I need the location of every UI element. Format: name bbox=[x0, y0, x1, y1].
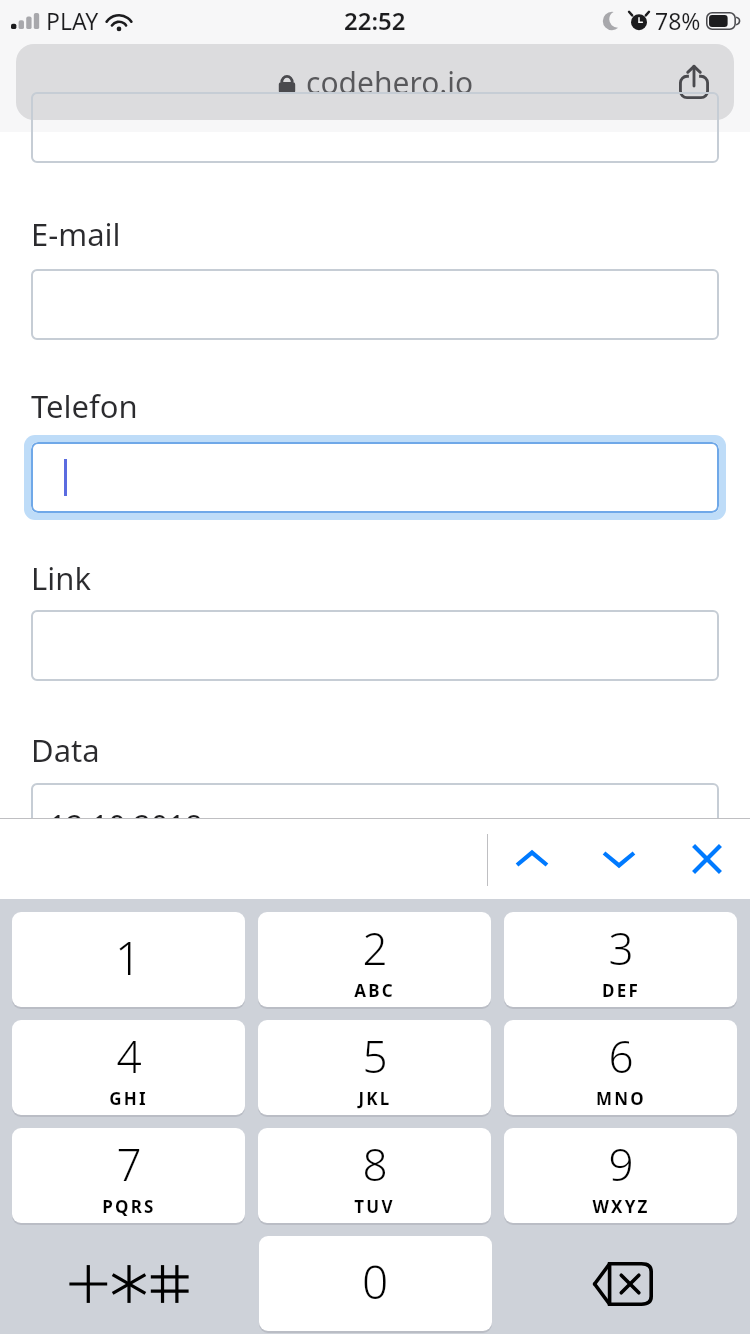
staticText: 5 bbox=[362, 1026, 388, 1086]
staticText: TUV bbox=[354, 1195, 395, 1218]
staticText: 12.10.2018 bbox=[49, 805, 203, 846]
staticText: 4 bbox=[116, 1026, 142, 1086]
button[interactable]: 0 bbox=[259, 1236, 492, 1331]
button[interactable]: 5 bbox=[258, 1020, 491, 1115]
button[interactable]: 1 bbox=[12, 912, 245, 1007]
staticText: PQRS bbox=[102, 1195, 156, 1218]
button[interactable]: codehero.io bbox=[16, 44, 734, 120]
staticText: E-mail bbox=[31, 213, 121, 255]
staticText: 6 bbox=[608, 1026, 634, 1086]
staticText: DEF bbox=[602, 979, 640, 1002]
staticText: 78% bbox=[655, 5, 701, 36]
staticText: codehero.io bbox=[306, 62, 474, 103]
staticText: Telefon bbox=[31, 385, 138, 427]
button[interactable]: Share bbox=[670, 58, 718, 106]
staticText: 8 bbox=[362, 1134, 388, 1194]
staticText: 22:52 bbox=[344, 4, 406, 37]
staticText: MNO bbox=[596, 1087, 646, 1110]
staticText: ABC bbox=[354, 979, 395, 1002]
button[interactable] bbox=[31, 610, 719, 681]
staticText: 9 bbox=[608, 1134, 634, 1194]
button[interactable]: 8 bbox=[258, 1128, 491, 1223]
staticText: PLAY bbox=[46, 5, 99, 36]
button[interactable] bbox=[24, 435, 726, 520]
staticText: 0 bbox=[362, 1250, 389, 1313]
staticText: 2 bbox=[362, 918, 388, 978]
button[interactable]: 6 bbox=[504, 1020, 737, 1115]
staticText: 3 bbox=[608, 918, 634, 978]
button[interactable]: Previous field bbox=[496, 831, 568, 887]
staticText: GHI bbox=[109, 1087, 148, 1110]
button[interactable]: 7 bbox=[12, 1128, 245, 1223]
staticText: 1 bbox=[115, 926, 142, 989]
staticText: WXYZ bbox=[592, 1195, 650, 1218]
staticText: JKL bbox=[358, 1087, 392, 1110]
staticText: Link bbox=[31, 557, 91, 599]
button[interactable] bbox=[31, 92, 719, 163]
button[interactable]: 2 bbox=[258, 912, 491, 1007]
staticText: Data bbox=[31, 729, 100, 771]
button[interactable]: 4 bbox=[12, 1020, 245, 1115]
button[interactable]: Close keyboard bbox=[671, 829, 743, 889]
button[interactable]: 9 bbox=[504, 1128, 737, 1223]
button[interactable] bbox=[31, 269, 719, 340]
button[interactable]: 3 bbox=[504, 912, 737, 1007]
staticText: 7 bbox=[116, 1134, 142, 1194]
button[interactable]: 12.10.2018 bbox=[31, 783, 719, 854]
button[interactable]: Delete bbox=[505, 1236, 738, 1331]
button[interactable]: Plus, star, hash bbox=[12, 1236, 245, 1331]
button[interactable]: Next field bbox=[583, 831, 655, 887]
